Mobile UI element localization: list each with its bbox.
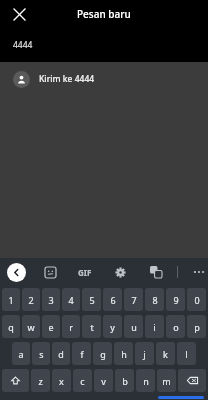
staticText: a [18, 348, 24, 360]
staticText: t [90, 321, 94, 333]
staticText: 7 [131, 294, 137, 306]
staticText: y [110, 321, 115, 333]
button[interactable]: Shift [2, 369, 29, 392]
button[interactable]: Translate [148, 264, 164, 280]
button[interactable]: 8 [145, 288, 164, 311]
staticText: 3 [48, 294, 54, 306]
button[interactable]: h [114, 342, 133, 365]
button[interactable]: a [12, 342, 30, 365]
button[interactable]: GIF [78, 267, 92, 278]
button[interactable]: More options [191, 264, 207, 280]
staticText: x [59, 375, 64, 387]
button[interactable]: Close [8, 3, 30, 25]
button[interactable]: w [22, 315, 40, 338]
button[interactable]: z [31, 369, 50, 392]
button[interactable]: 5 [82, 288, 101, 311]
button[interactable]: y [103, 315, 122, 338]
button[interactable]: 7 [124, 288, 143, 311]
button[interactable]: n [136, 369, 155, 392]
staticText: s [39, 348, 44, 360]
staticText: Kirim ke 4444 [39, 73, 95, 85]
button[interactable]: 9 [166, 288, 185, 311]
staticText: c [80, 375, 85, 387]
staticText: j [143, 348, 146, 360]
button[interactable]: k [156, 342, 175, 365]
button[interactable]: c [73, 369, 92, 392]
staticText: 8 [152, 294, 158, 306]
button[interactable]: 2 [22, 288, 40, 311]
staticText: 6 [110, 294, 116, 306]
staticText: h [121, 348, 127, 360]
button[interactable]: Stickers [42, 264, 58, 280]
staticText: n [143, 375, 149, 387]
button[interactable]: p [187, 315, 206, 338]
button[interactable]: d [52, 342, 70, 365]
button[interactable]: i [145, 315, 164, 338]
staticText: w [27, 321, 35, 333]
button[interactable]: m [157, 369, 176, 392]
button[interactable]: t [82, 315, 101, 338]
staticText: r [69, 321, 73, 333]
staticText: 0 [194, 294, 200, 306]
staticText: g [100, 348, 106, 360]
button[interactable]: s [32, 342, 50, 365]
staticText: GIF [78, 267, 92, 278]
staticText: 2 [28, 294, 34, 306]
staticText: k [163, 348, 168, 360]
button[interactable]: 6 [103, 288, 122, 311]
staticText: i [153, 321, 156, 333]
staticText: p [194, 321, 200, 333]
button[interactable]: v [94, 369, 113, 392]
staticText: Pesan baru [77, 7, 131, 21]
staticText: v [101, 375, 106, 387]
button[interactable]: 1 [2, 288, 20, 311]
staticText: q [8, 321, 14, 333]
button[interactable]: l [177, 342, 196, 365]
staticText: 4 [68, 294, 74, 306]
staticText: l [185, 348, 188, 360]
staticText: m [162, 375, 171, 387]
button[interactable]: Kirim ke 4444 [0, 62, 208, 96]
button[interactable]: q [2, 315, 20, 338]
staticText: 1 [8, 294, 14, 306]
button[interactable]: 0 [187, 288, 206, 311]
button[interactable]: 3 [42, 288, 60, 311]
button[interactable]: u [124, 315, 143, 338]
staticText: o [173, 321, 179, 333]
staticText: u [131, 321, 137, 333]
staticText: e [48, 321, 54, 333]
staticText: 5 [89, 294, 95, 306]
button[interactable]: x [52, 369, 71, 392]
button[interactable]: b [115, 369, 134, 392]
staticText: 4444 [13, 39, 33, 51]
staticText: z [38, 375, 43, 387]
button[interactable]: g [93, 342, 112, 365]
button[interactable]: o [166, 315, 185, 338]
button[interactable]: j [135, 342, 154, 365]
staticText: b [122, 375, 128, 387]
button[interactable]: Back [7, 263, 26, 282]
button[interactable]: r [62, 315, 80, 338]
staticText: 9 [173, 294, 179, 306]
button[interactable]: f [72, 342, 91, 365]
button[interactable]: Settings [112, 264, 128, 280]
button[interactable]: Backspace [178, 369, 206, 392]
button[interactable]: e [42, 315, 60, 338]
staticText: f [80, 348, 84, 360]
button[interactable]: 4 [62, 288, 80, 311]
staticText: d [58, 348, 64, 360]
